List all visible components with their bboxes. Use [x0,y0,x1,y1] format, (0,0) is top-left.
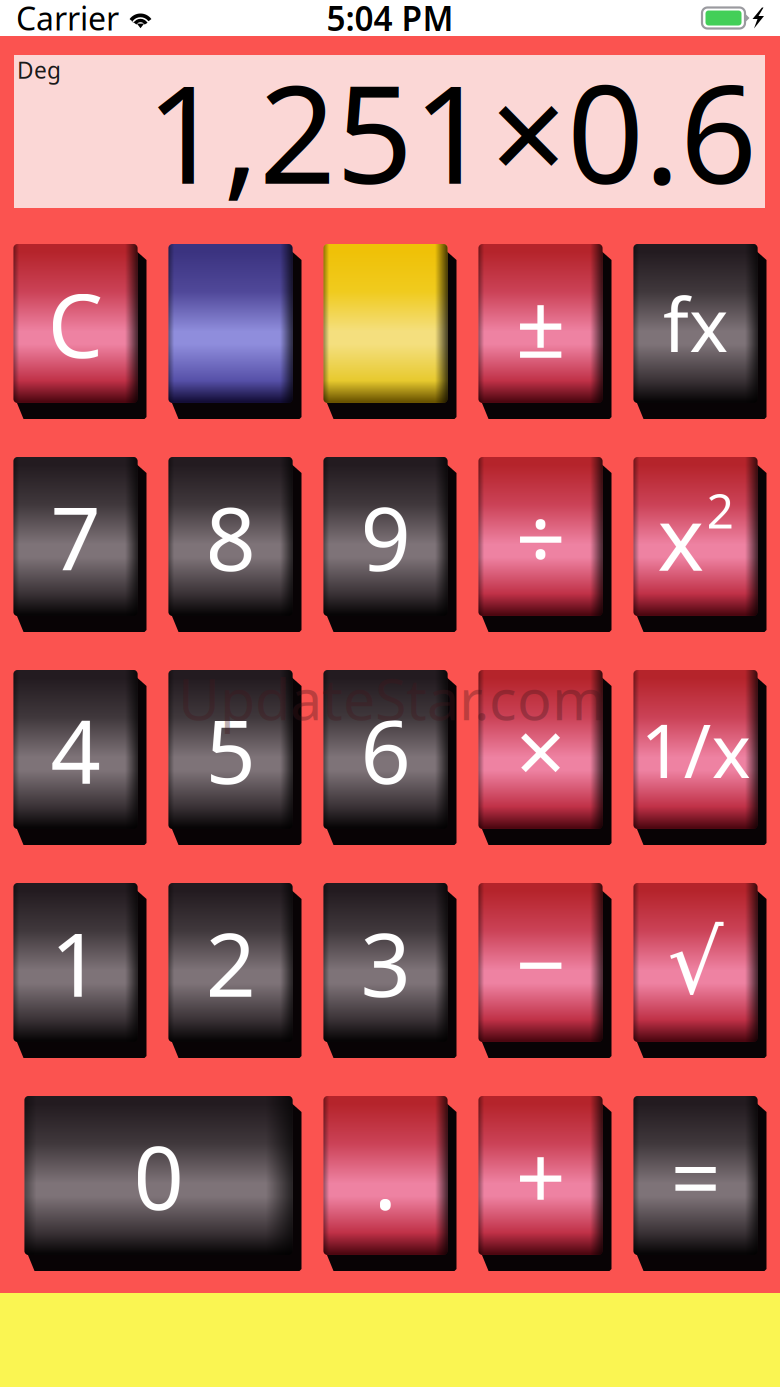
staticText: 1,251×0.6 [146,42,757,221]
staticText: 3 [360,904,410,1021]
staticText: 1 [50,904,100,1021]
button[interactable]: = [633,1096,766,1271]
button[interactable]: 0 [24,1096,301,1271]
button[interactable]: ± [478,244,611,419]
button[interactable]: √ [633,883,766,1058]
button[interactable]: − [478,883,611,1058]
staticText: 8 [205,478,255,595]
staticText: 7 [50,478,100,595]
staticText: 0 [133,1117,183,1234]
button[interactable]: . [323,1096,456,1271]
button[interactable]: × [478,670,611,845]
staticText: 2 [706,478,733,542]
button[interactable]: 1 [13,883,146,1058]
staticText: C [47,265,103,382]
staticText: ± [515,265,565,382]
button[interactable] [168,244,301,419]
button[interactable]: 3 [323,883,456,1058]
button[interactable]: 1/x [633,670,766,845]
staticText: UpdateStar.com [178,660,606,736]
button[interactable]: 5 [168,670,301,845]
staticText: Deg [17,55,61,85]
button[interactable]: 2 [168,883,301,1058]
staticText: × [515,691,565,808]
staticText: x [657,478,704,595]
staticText: fx [663,274,728,373]
staticText: 5:04 PM [326,0,453,40]
staticText: 9 [360,478,410,595]
button[interactable]: + [478,1096,611,1271]
staticText: = [670,1117,720,1234]
button[interactable]: x [633,457,766,632]
button[interactable]: 4 [13,670,146,845]
staticText: ÷ [515,478,565,595]
staticText: 4 [50,691,100,808]
staticText: 5 [205,691,255,808]
button[interactable]: 6 [323,670,456,845]
staticText: 1/x [640,700,750,799]
staticText: Carrier [16,0,119,39]
button[interactable]: ÷ [478,457,611,632]
staticText: 2 [205,904,255,1021]
button[interactable]: 7 [13,457,146,632]
button[interactable]: 9 [323,457,456,632]
staticText: − [515,904,565,1021]
staticText: + [515,1117,565,1234]
staticText: . [373,1117,397,1234]
button[interactable] [323,244,456,419]
button[interactable]: fx [633,244,766,419]
button[interactable]: C [13,244,146,419]
staticText: √ [667,913,723,1012]
staticText: 6 [360,691,410,808]
button[interactable]: 8 [168,457,301,632]
